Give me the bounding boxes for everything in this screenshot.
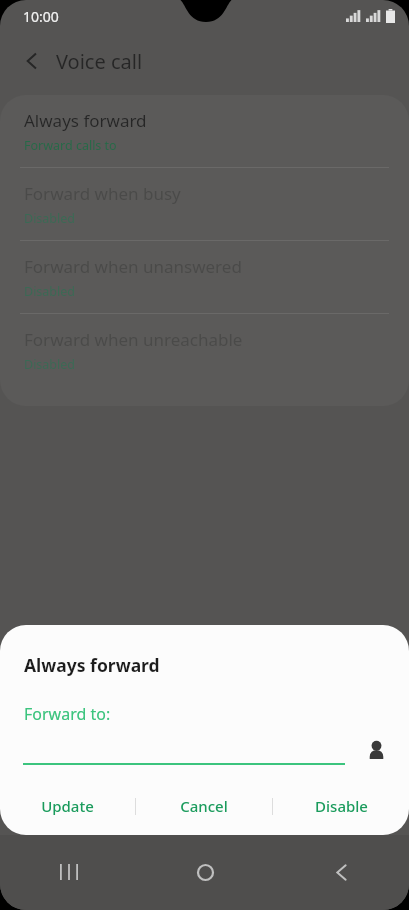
staticText: 10:00 [23, 7, 59, 26]
staticText: Forward when unreachable [24, 328, 243, 351]
staticText: Forward when unanswered [24, 255, 242, 278]
staticText: Always forward [24, 109, 147, 132]
staticText: Voice call [56, 48, 143, 75]
button[interactable]: Recent apps [0, 849, 137, 895]
staticText: Disable [315, 796, 368, 816]
staticText: Cancel [180, 796, 228, 816]
button[interactable]: Always forward [0, 95, 409, 167]
button[interactable]: Cancel [136, 787, 272, 825]
staticText: Disabled [24, 283, 76, 300]
button[interactable]: Back [12, 41, 52, 81]
button[interactable]: Disable [273, 787, 409, 825]
staticText: Forward calls to [24, 137, 117, 154]
staticText: Forward to: [24, 703, 111, 725]
staticText: Forward when busy [24, 182, 181, 205]
button[interactable]: Choose contact [359, 732, 393, 766]
button[interactable]: Back [273, 849, 409, 895]
staticText: Disabled [24, 356, 76, 373]
staticText: Disabled [24, 210, 76, 227]
staticText: Always forward [24, 653, 160, 677]
button[interactable]: Update [0, 787, 135, 825]
staticText: Update [41, 796, 94, 816]
button[interactable]: Home [137, 849, 273, 895]
